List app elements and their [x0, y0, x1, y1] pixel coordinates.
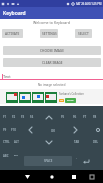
button[interactable]: F4 — [24, 112, 40, 122]
button[interactable]: F7 — [77, 112, 93, 122]
button[interactable]: ACTIVATE — [2, 29, 23, 38]
button[interactable]: ABC — [0, 151, 14, 161]
button[interactable]: F6 — [67, 112, 83, 122]
button[interactable]: CHOOSE IMAGE — [3, 46, 101, 55]
staticText: SPACE — [44, 159, 53, 163]
button[interactable]: SELECT — [75, 29, 92, 38]
button[interactable]: DEL — [88, 137, 103, 147]
button[interactable]: CTRL — [0, 137, 14, 147]
staticText: CLEAR IMAGE — [42, 61, 63, 65]
staticText: Sorbara's Collection — [59, 92, 84, 96]
button[interactable]: F5 — [55, 112, 71, 122]
staticText: F8 — [93, 115, 97, 119]
button[interactable]: . — [68, 153, 84, 163]
button[interactable]: F8 — [87, 112, 103, 122]
staticText: F1 — [3, 115, 7, 119]
button[interactable]: Settings — [90, 125, 103, 135]
button[interactable]: F1 — [0, 112, 13, 122]
button[interactable]: F2 — [6, 112, 22, 122]
button[interactable]: F10 — [6, 125, 22, 135]
button[interactable]: Switch keyboard — [82, 170, 102, 183]
staticText: CTRL — [3, 140, 10, 144]
staticText: . — [76, 156, 77, 160]
button[interactable]: SETTINGS — [40, 29, 58, 38]
staticText: F2 — [12, 115, 16, 119]
staticText: TAB — [74, 140, 80, 144]
button[interactable]: Install — [67, 99, 74, 102]
staticText: SETTINGS — [42, 32, 57, 36]
staticText: SAT 26 AUG 1:25 PM — [76, 2, 102, 6]
staticText: F9 — [3, 128, 7, 132]
button[interactable]: Right — [67, 125, 83, 135]
staticText: ABC — [3, 154, 9, 158]
staticText: OK — [51, 129, 55, 133]
button[interactable]: ••• — [8, 151, 24, 161]
button[interactable]: F3 — [15, 112, 31, 122]
button[interactable]: Sorbara's Collection — [0, 89, 103, 104]
staticText: DEL — [93, 140, 99, 144]
staticText: Text — [3, 74, 11, 79]
button[interactable]: Left — [22, 125, 38, 135]
button[interactable]: Text — [0, 70, 103, 80]
staticText: F10 — [11, 128, 17, 132]
staticText: Keyboard — [3, 10, 26, 17]
button[interactable]: Enter — [78, 156, 94, 166]
staticText: F7 — [83, 115, 87, 119]
button[interactable]: TAB — [69, 137, 85, 147]
staticText: CHOOSE IMAGE — [40, 49, 64, 53]
staticText: SELECT — [78, 32, 89, 36]
staticText: Install — [67, 99, 74, 102]
staticText: Welcome to Keyboard — [0, 20, 103, 25]
button[interactable]: OK — [45, 126, 61, 136]
staticText: F6 — [73, 115, 77, 119]
staticText: No image selected — [0, 83, 103, 87]
button[interactable]: CLEAR IMAGE — [3, 58, 101, 67]
button[interactable]: Down — [41, 137, 57, 147]
button[interactable]: Home — [42, 170, 62, 183]
button[interactable]: Recents — [64, 170, 84, 183]
staticText: F4 — [30, 115, 34, 119]
button[interactable]: Back — [17, 170, 37, 183]
staticText: ALT — [14, 140, 19, 144]
staticText: ACTIVATE — [5, 32, 20, 36]
button[interactable]: Up — [41, 112, 57, 122]
button[interactable]: ALT — [8, 137, 24, 147]
staticText: F5 — [61, 115, 65, 119]
staticText: F3 — [21, 115, 25, 119]
button[interactable]: SPACE — [24, 156, 72, 166]
staticText: Ad — [60, 99, 63, 102]
button[interactable]: F9 — [0, 125, 13, 135]
staticText: ••• — [14, 154, 18, 158]
